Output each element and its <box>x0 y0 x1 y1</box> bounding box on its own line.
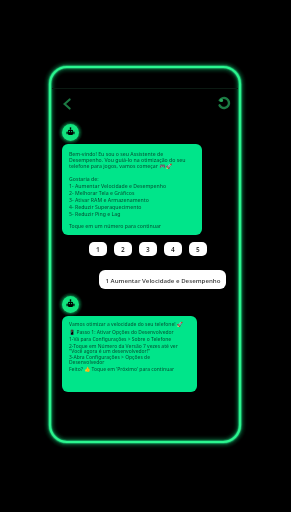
staticText: 3-Abra Configurações > Opções de Desenvo… <box>69 354 150 365</box>
button[interactable]: 1 <box>89 242 107 256</box>
staticText: 1- Aumentar Velocidade e Desempenho <box>69 182 167 189</box>
button[interactable]: Assistant <box>58 292 83 317</box>
button[interactable]: 4 <box>164 242 182 256</box>
staticText: 1-Vá para Configurações > Sobre o Telefo… <box>69 336 172 343</box>
staticText: 3 <box>146 245 150 254</box>
staticText: 5- Reduzir Ping e Lag <box>69 210 121 217</box>
staticText: 4- Reduzir Superaquecimento <box>69 203 142 210</box>
staticText: Vamos otimizar a velocidade do seu telef… <box>69 321 184 328</box>
staticText: Bem-vindo! Eu sou o seu Assistente de De… <box>69 150 186 169</box>
staticText: Toque em um número para continuar <box>69 222 162 229</box>
button[interactable]: 3 <box>139 242 157 256</box>
staticText: 1 <box>96 245 100 254</box>
button[interactable]: Back <box>57 94 77 114</box>
button[interactable]: 1 Aumentar Velocidade e Desempenho <box>99 270 226 289</box>
staticText: 4 <box>171 245 175 254</box>
staticText: 5 <box>196 245 200 254</box>
staticText: 1 Aumentar Velocidade e Desempenho <box>105 276 221 284</box>
staticText: Gostaria de: <box>69 175 99 182</box>
button[interactable]: Bem-vindo! Eu sou o seu Assistente de De… <box>62 144 202 235</box>
staticText: 2-Toque em Número da Versão 7 vezes até … <box>69 343 178 354</box>
staticText: 📱 Passo 1: Ativar Opções do Desenvolvedo… <box>69 329 174 336</box>
button[interactable]: Assistant <box>58 120 83 145</box>
staticText: 2 <box>121 245 125 254</box>
button[interactable]: Refresh <box>215 94 233 112</box>
button[interactable]: Vamos otimizar a velocidade do seu telef… <box>62 316 197 392</box>
staticText: 2- Melhorar Tela e Gráficos <box>69 189 135 196</box>
staticText: Feito? 👍 Toque em 'Próximo' para continu… <box>69 366 175 373</box>
staticText: 3- Ativar RAM e Armazenamento <box>69 196 149 203</box>
button[interactable]: 5 <box>189 242 207 256</box>
button[interactable]: 2 <box>114 242 132 256</box>
